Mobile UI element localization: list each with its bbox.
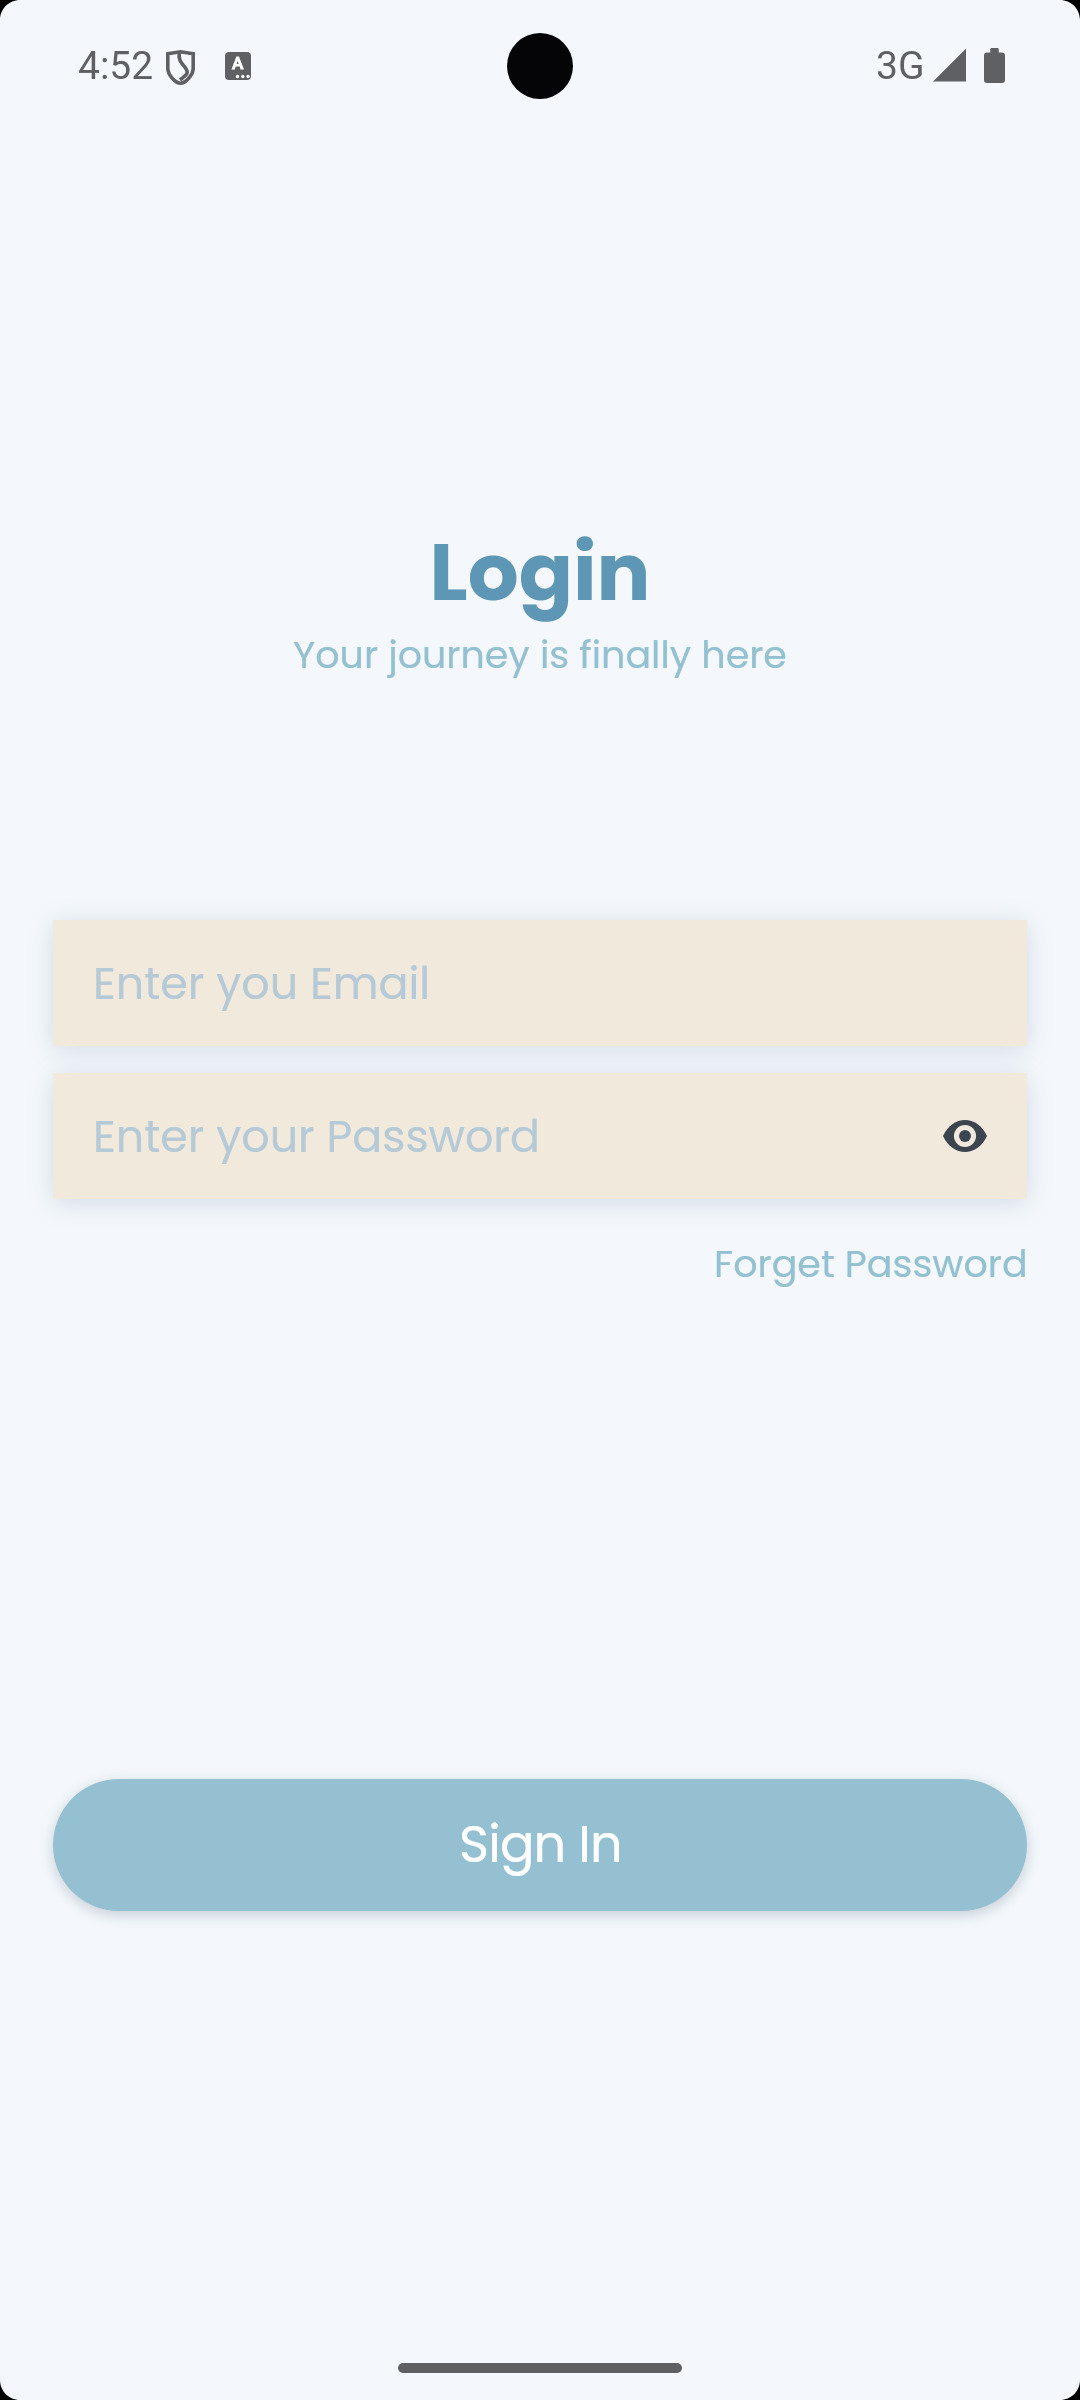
- staticText: Sign In: [459, 1808, 622, 1879]
- staticText: 4:52: [78, 43, 154, 89]
- staticText: Login: [0, 516, 1080, 628]
- button[interactable]: Sign In: [53, 1779, 1027, 1911]
- button[interactable]: Forget Password: [702, 1231, 1040, 1296]
- staticText: Enter your Password: [93, 1105, 540, 1167]
- button[interactable]: Show password: [933, 1104, 997, 1168]
- button[interactable]: Enter you Email: [53, 920, 1027, 1046]
- staticText: Your journey is finally here: [0, 628, 1080, 681]
- staticText: A: [232, 53, 244, 73]
- staticText: 3G: [876, 43, 925, 89]
- staticText: Enter you Email: [93, 952, 431, 1014]
- button[interactable]: Enter your Password: [53, 1073, 1027, 1199]
